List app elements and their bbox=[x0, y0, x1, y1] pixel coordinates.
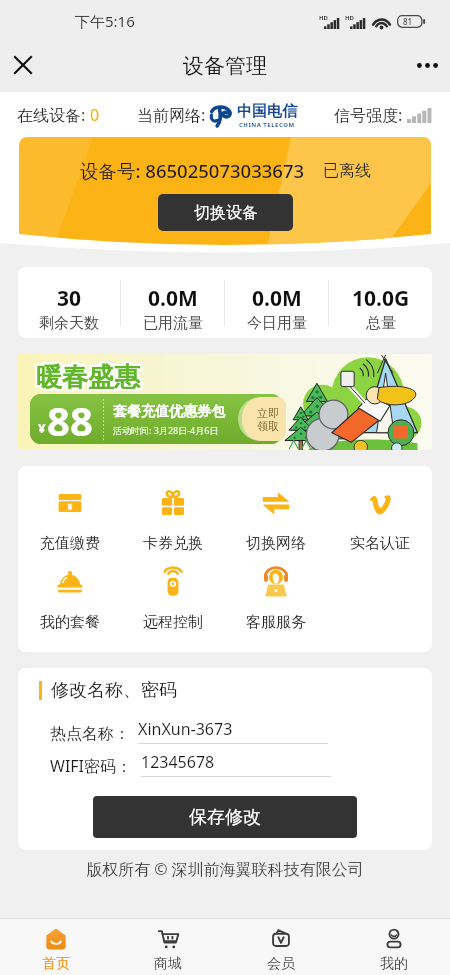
button[interactable]: 实名认证 bbox=[328, 488, 432, 553]
staticText: HD bbox=[319, 14, 328, 22]
staticText: XinXun-3673 bbox=[138, 718, 233, 740]
staticText: 当前网络: bbox=[137, 104, 210, 126]
button[interactable]: 客服服务 bbox=[224, 567, 328, 632]
staticText: 充值缴费 bbox=[40, 534, 100, 553]
staticText: 81 bbox=[403, 16, 413, 27]
staticText: 暖春盛惠 bbox=[36, 361, 140, 394]
button[interactable]: 立即 领取 bbox=[238, 397, 286, 441]
staticText: 暖春盛惠 bbox=[34, 361, 138, 394]
staticText: 暖春盛惠 bbox=[38, 361, 142, 394]
staticText: 下午5:16 bbox=[75, 11, 135, 31]
staticText: 切换设备 bbox=[194, 203, 258, 223]
staticText: ¥ bbox=[38, 419, 46, 437]
staticText: 我的套餐 bbox=[40, 613, 100, 632]
staticText: 88 bbox=[47, 394, 93, 443]
staticText: 活动时间: 3月28日-4月6日 bbox=[113, 424, 219, 436]
staticText: 30 bbox=[57, 284, 82, 313]
staticText: 设备号: 865025073033673 bbox=[80, 158, 305, 183]
staticText: 12345678 bbox=[141, 751, 215, 773]
staticText: 暖春盛惠 bbox=[34, 363, 138, 396]
staticText: 会员 bbox=[267, 955, 295, 973]
staticText: 中国电信 bbox=[237, 102, 297, 121]
staticText: 剩余天数 bbox=[39, 314, 99, 333]
button[interactable]: 我的套餐 bbox=[18, 567, 121, 632]
button[interactable]: 切换网络 bbox=[224, 488, 328, 553]
button[interactable]: 暖春盛惠 bbox=[18, 354, 432, 450]
button[interactable]: 卡券兑换 bbox=[121, 488, 224, 553]
staticText: 热点名称： bbox=[50, 724, 130, 744]
staticText: 暖春盛惠 bbox=[38, 359, 142, 392]
button[interactable]: 充值缴费 bbox=[18, 488, 121, 553]
staticText: 首页 bbox=[42, 955, 70, 973]
button[interactable]: 保存修改 bbox=[93, 796, 357, 838]
staticText: 暖春盛惠 bbox=[36, 359, 140, 392]
staticText: 10.0G bbox=[352, 284, 410, 313]
staticText: WIFI密码： bbox=[50, 755, 133, 777]
staticText: 暖春盛惠 bbox=[34, 359, 138, 392]
staticText: 套餐充值优惠券包 bbox=[113, 403, 225, 421]
staticText: 修改名称、密码 bbox=[51, 679, 177, 702]
staticText: 暖春盛惠 bbox=[38, 363, 142, 396]
button[interactable]: More options bbox=[405, 43, 449, 87]
staticText: 0 bbox=[90, 104, 100, 126]
button[interactable]: 商城 bbox=[112, 919, 224, 975]
button[interactable]: 首页 bbox=[0, 919, 112, 975]
staticText: CHINA TELECOM bbox=[239, 121, 295, 129]
button[interactable]: 我的 bbox=[337, 919, 450, 975]
staticText: 0.0M bbox=[148, 284, 198, 313]
staticText: 0.0M bbox=[252, 284, 302, 313]
staticText: 在线设备: bbox=[17, 104, 90, 126]
button[interactable]: 切换设备 bbox=[158, 194, 293, 231]
staticText: 设备管理 bbox=[183, 53, 267, 79]
staticText: HD bbox=[345, 14, 354, 22]
staticText: 卡券兑换 bbox=[143, 534, 203, 553]
staticText: 保存修改 bbox=[189, 806, 261, 829]
staticText: 客服服务 bbox=[246, 613, 306, 632]
staticText: 版权所有 © 深圳前海翼联科技有限公司 bbox=[0, 858, 450, 880]
staticText: 总量 bbox=[366, 314, 396, 333]
staticText: 实名认证 bbox=[350, 534, 410, 553]
button[interactable]: 远程控制 bbox=[121, 567, 224, 632]
staticText: 已用流量 bbox=[143, 314, 203, 333]
staticText: 我的 bbox=[380, 955, 408, 973]
staticText: 立即 领取 bbox=[257, 406, 279, 433]
staticText: 暖春盛惠 bbox=[36, 363, 140, 396]
staticText: 商城 bbox=[154, 955, 182, 973]
staticText: 远程控制 bbox=[143, 613, 203, 632]
staticText: 切换网络 bbox=[246, 534, 306, 553]
button[interactable]: Close bbox=[1, 43, 45, 87]
staticText: 信号强度: bbox=[334, 104, 407, 126]
button[interactable]: 会员 bbox=[224, 919, 337, 975]
staticText: 已离线 bbox=[323, 161, 371, 181]
staticText: 今日用量 bbox=[247, 314, 307, 333]
